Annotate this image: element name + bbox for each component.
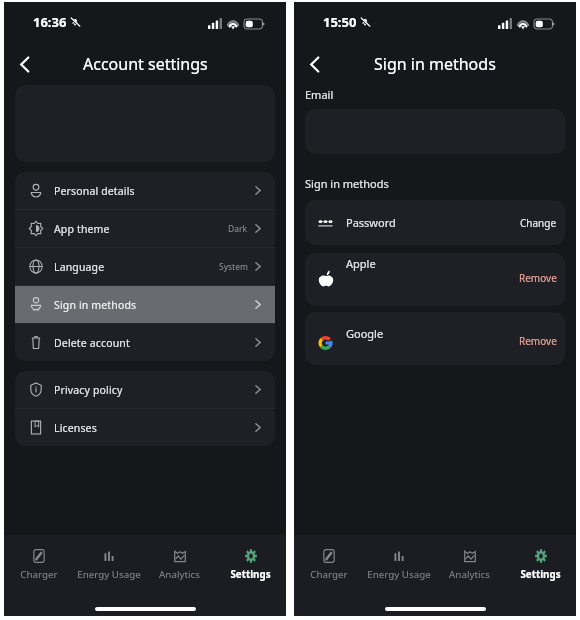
staticText: Google xyxy=(346,326,384,341)
staticText: App theme xyxy=(54,222,110,236)
button[interactable]: Charger xyxy=(294,535,364,596)
staticText: Analytics xyxy=(159,568,200,581)
staticText: Charger xyxy=(20,568,58,581)
button[interactable]: Settings xyxy=(505,535,576,596)
button[interactable]: Privacy policy xyxy=(15,371,275,408)
staticText: Sign in methods xyxy=(374,53,496,75)
button[interactable]: Analytics xyxy=(144,535,215,596)
staticText: System xyxy=(219,261,248,273)
staticText: Language xyxy=(54,260,105,274)
button[interactable]: Energy Usage xyxy=(364,535,434,596)
staticText: Password xyxy=(346,215,396,230)
staticText: Email xyxy=(305,87,334,102)
staticText: Dark xyxy=(228,223,248,235)
staticText: Remove xyxy=(519,271,557,285)
staticText: Settings xyxy=(520,568,561,581)
button[interactable]: Licenses xyxy=(15,409,275,446)
staticText: Licenses xyxy=(54,421,97,435)
staticText: Personal details xyxy=(54,184,135,198)
button[interactable]: Sign in methods xyxy=(15,286,275,323)
button[interactable]: Google xyxy=(305,312,565,365)
staticText: 15:50 xyxy=(323,13,357,31)
button[interactable]: Apple xyxy=(305,253,565,306)
button[interactable]: Personal details xyxy=(15,172,275,209)
staticText: Change xyxy=(520,216,557,230)
staticText: 16:36 xyxy=(33,13,67,31)
button[interactable]: Energy Usage xyxy=(74,535,144,596)
button[interactable]: Back xyxy=(299,49,329,79)
staticText: Remove xyxy=(519,334,557,348)
staticText: Sign in methods xyxy=(54,298,137,312)
button[interactable]: Language xyxy=(15,248,275,285)
staticText: Sign in methods xyxy=(305,176,389,191)
button[interactable]: App theme xyxy=(15,210,275,247)
staticText: Delete account xyxy=(54,336,130,350)
button[interactable]: Back xyxy=(9,49,39,79)
staticText: Energy Usage xyxy=(367,568,431,581)
button[interactable]: Delete account xyxy=(15,324,275,361)
button[interactable]: Analytics xyxy=(434,535,505,596)
staticText: Analytics xyxy=(449,568,490,581)
button[interactable]: Charger xyxy=(4,535,74,596)
staticText: Apple xyxy=(346,256,376,271)
staticText: Account settings xyxy=(83,53,208,75)
button[interactable]: Password xyxy=(305,200,565,245)
staticText: Charger xyxy=(310,568,348,581)
button[interactable]: Settings xyxy=(215,535,286,596)
staticText: Privacy policy xyxy=(54,383,123,397)
staticText: Settings xyxy=(230,568,271,581)
staticText: Energy Usage xyxy=(77,568,141,581)
